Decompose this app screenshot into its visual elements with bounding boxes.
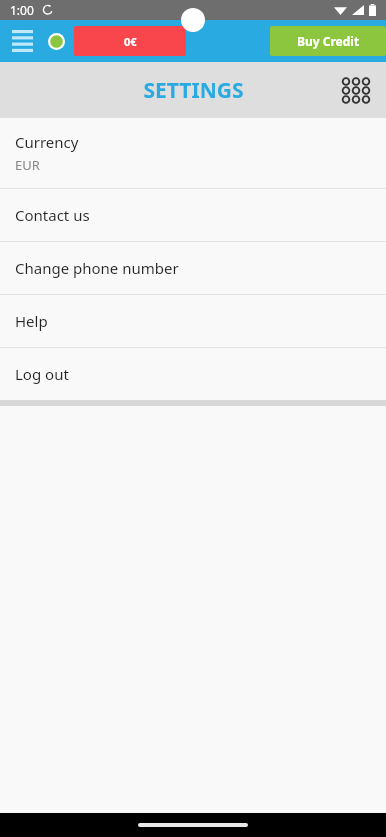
button[interactable]: Menu	[0, 20, 44, 62]
staticText: 0€	[124, 34, 137, 49]
button[interactable]: 0€	[74, 26, 186, 56]
staticText: Log out	[15, 364, 69, 384]
button[interactable]: Status	[44, 29, 68, 53]
button[interactable]: Help	[0, 295, 386, 347]
staticText: 1:00	[10, 2, 34, 18]
button[interactable]: Currency	[0, 118, 386, 188]
button[interactable]: Log out	[0, 348, 386, 400]
button[interactable]: Contact us	[0, 189, 386, 241]
button[interactable]: Change phone number	[0, 242, 386, 294]
staticText: Change phone number	[15, 258, 179, 278]
staticText: EUR	[15, 156, 40, 174]
button[interactable]: Apps grid	[334, 68, 378, 112]
staticText: SETTINGS	[143, 76, 244, 105]
staticText: Contact us	[15, 205, 90, 225]
staticText: Buy Credit	[297, 33, 360, 49]
button[interactable]: Buy Credit	[270, 26, 386, 56]
staticText: Currency	[15, 132, 79, 152]
staticText: Help	[15, 311, 48, 331]
